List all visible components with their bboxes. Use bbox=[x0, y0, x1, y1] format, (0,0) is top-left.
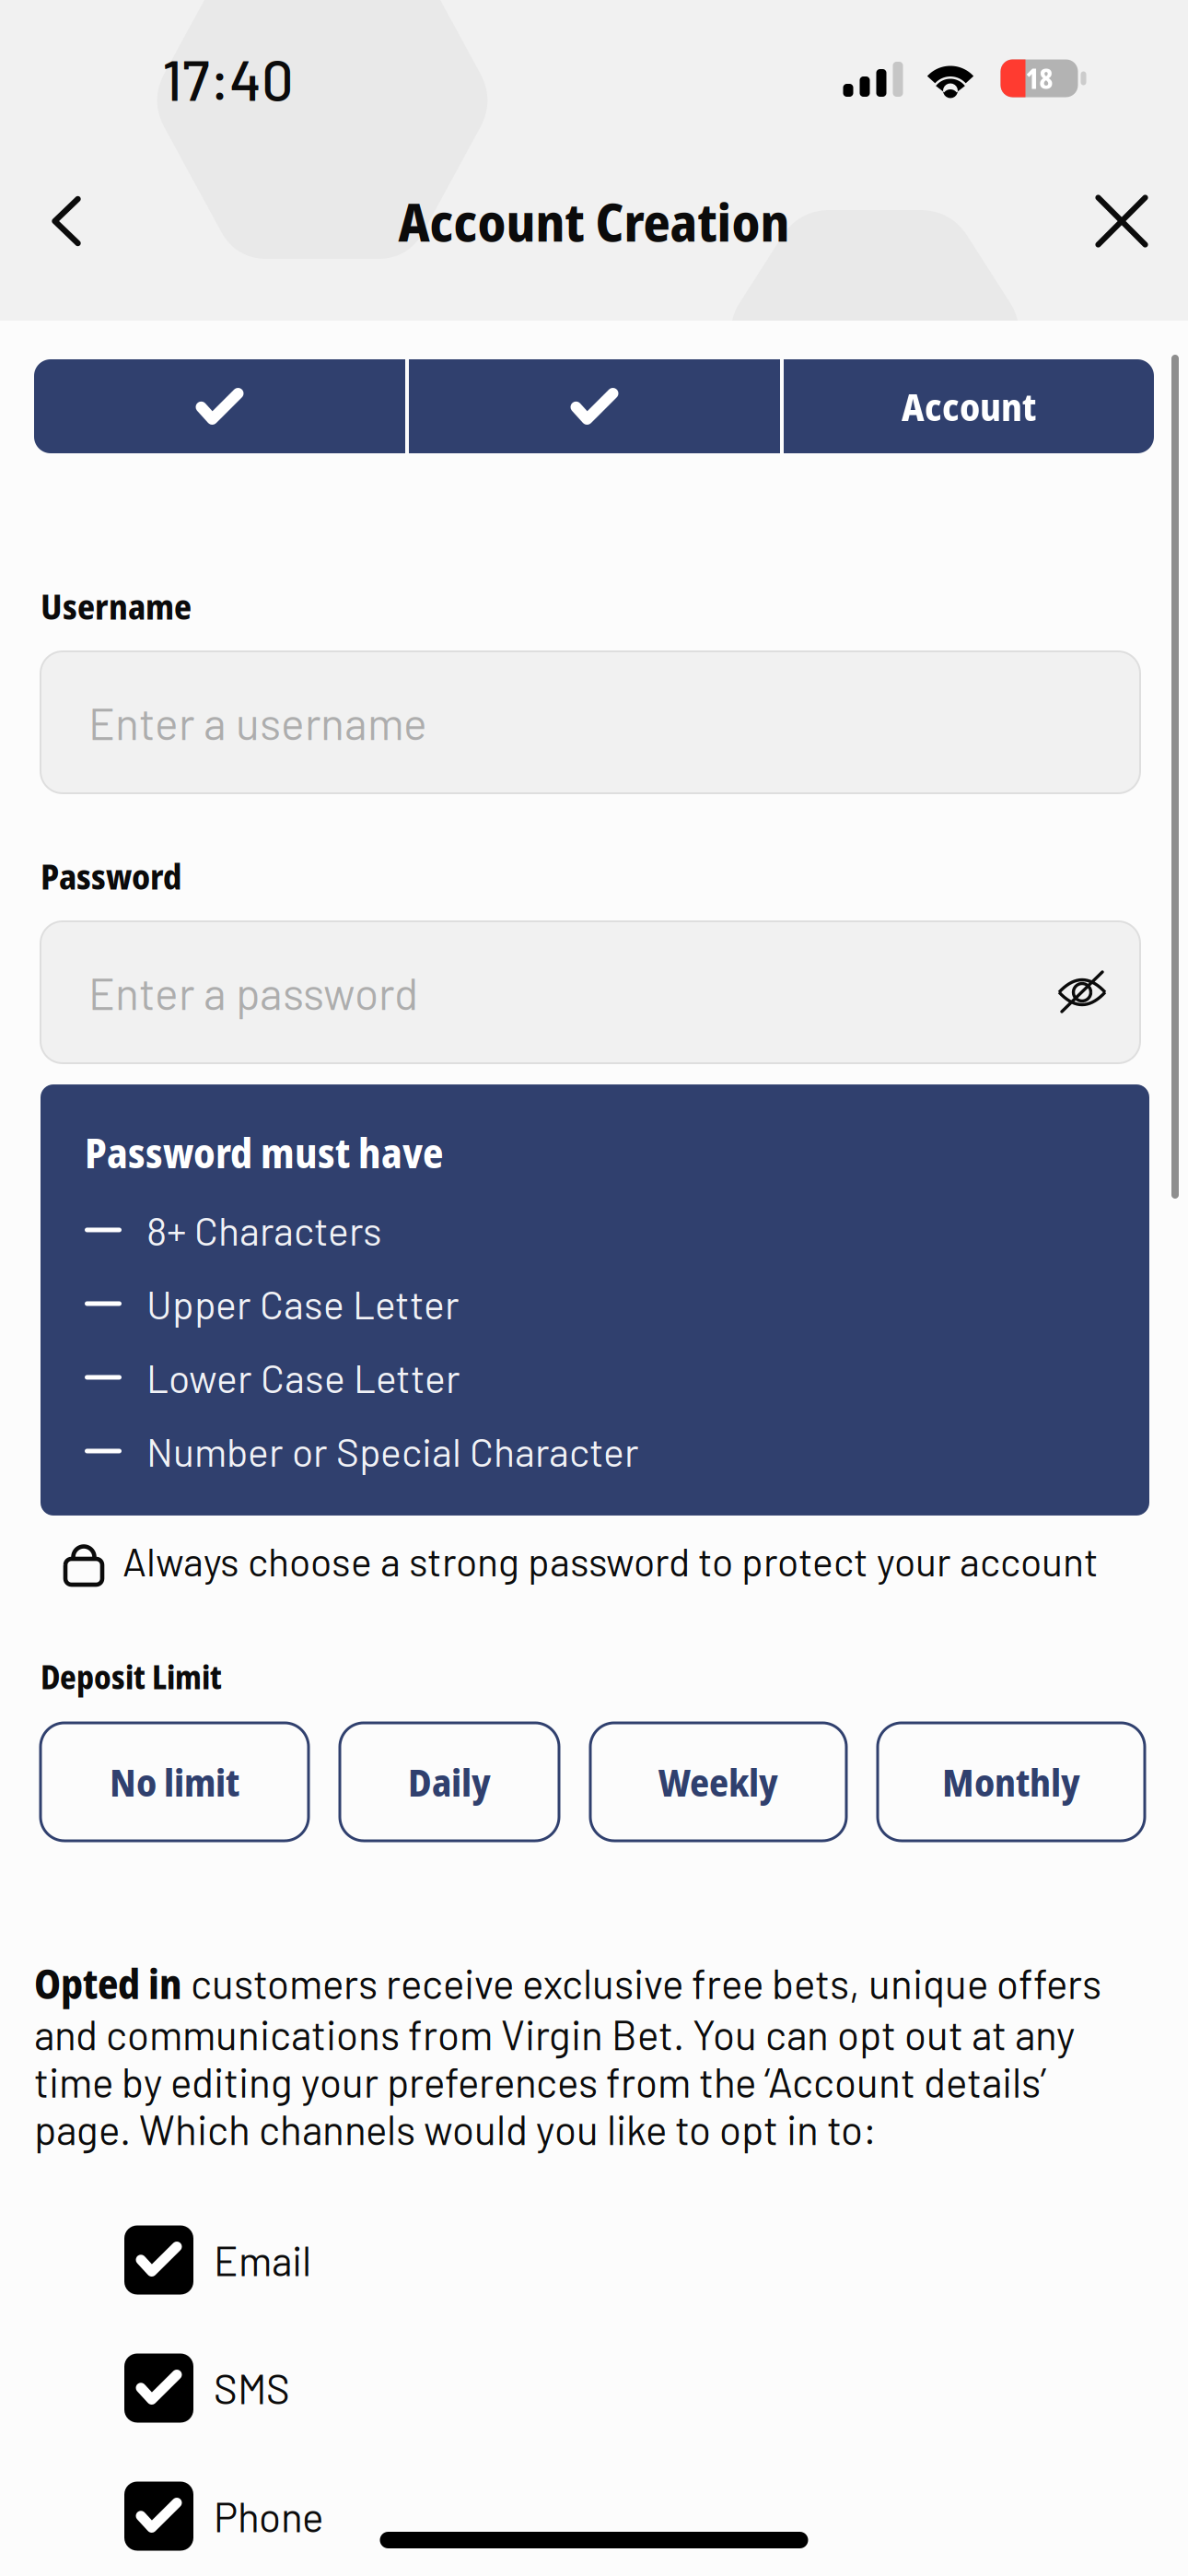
staticText: Upper Case Letter bbox=[146, 1280, 460, 1327]
button[interactable]: Account bbox=[784, 359, 1154, 453]
button[interactable]: Daily bbox=[340, 1723, 559, 1841]
staticText: Account bbox=[902, 380, 1036, 432]
button[interactable]: Step 2, complete bbox=[409, 359, 780, 453]
staticText: Lower Case Letter bbox=[146, 1354, 460, 1401]
staticText: Always choose a strong password to prote… bbox=[122, 1537, 1099, 1584]
staticText: Daily bbox=[408, 1756, 491, 1808]
staticText: Email bbox=[214, 2236, 311, 2284]
button[interactable]: Email bbox=[124, 2223, 511, 2297]
staticText: No limit bbox=[110, 1756, 239, 1808]
staticText: Account Creation bbox=[398, 185, 790, 257]
staticText: Enter a password bbox=[88, 966, 418, 1019]
staticText: Opted in customers receive exclusive fre… bbox=[34, 1957, 1101, 2153]
button[interactable]: Step 1, complete bbox=[34, 359, 405, 453]
staticText: Number or Special Character bbox=[146, 1427, 639, 1475]
staticText: SMS bbox=[214, 2364, 290, 2412]
button[interactable]: Close bbox=[1071, 170, 1172, 272]
staticText: Monthly bbox=[942, 1756, 1080, 1808]
button[interactable]: Monthly bbox=[878, 1723, 1145, 1841]
staticText: Phone bbox=[214, 2492, 323, 2540]
staticText: Password bbox=[41, 853, 181, 900]
button[interactable]: No limit bbox=[41, 1723, 309, 1841]
button[interactable]: Enter a username bbox=[41, 651, 1140, 793]
button[interactable]: Enter a password bbox=[41, 921, 1140, 1063]
staticText: Username bbox=[41, 583, 192, 630]
staticText: Deposit Limit bbox=[41, 1655, 222, 1699]
button[interactable]: Back bbox=[16, 170, 117, 272]
staticText: 18 bbox=[1025, 60, 1053, 97]
button[interactable]: Phone bbox=[124, 2479, 511, 2553]
button[interactable]: SMS bbox=[124, 2351, 511, 2425]
button[interactable]: Weekly bbox=[590, 1723, 846, 1841]
staticText: 17:40 bbox=[162, 44, 294, 112]
staticText: Enter a username bbox=[88, 696, 427, 749]
staticText: Weekly bbox=[658, 1756, 778, 1808]
staticText: Password must have bbox=[85, 1125, 443, 1180]
staticText: 8+ Characters bbox=[146, 1206, 382, 1254]
